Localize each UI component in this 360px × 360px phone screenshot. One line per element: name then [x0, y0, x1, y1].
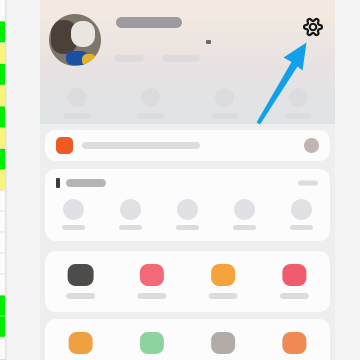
button[interactable]: Contact	[273, 199, 330, 230]
button[interactable]	[45, 130, 330, 161]
button[interactable]: Contact	[159, 199, 216, 230]
button[interactable]: Contact	[45, 199, 102, 230]
button[interactable]: Service	[187, 332, 259, 360]
button[interactable]: Contact	[102, 199, 159, 230]
button[interactable]: Shortcut	[261, 88, 335, 119]
button[interactable]: Shortcut	[187, 88, 261, 119]
button[interactable]: Settings	[297, 11, 329, 43]
button[interactable]: Service	[116, 264, 187, 299]
button[interactable]: Contact	[216, 199, 273, 230]
button[interactable]: Service	[259, 264, 330, 299]
button[interactable]: Service	[187, 264, 259, 299]
button[interactable]: Service	[45, 264, 116, 299]
button[interactable]: Service	[45, 332, 116, 360]
button[interactable]: Service	[259, 332, 330, 360]
button[interactable]: Service	[116, 332, 187, 360]
